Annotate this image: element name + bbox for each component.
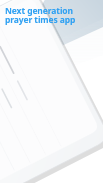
staticText: Next generation prayer times app <box>5 5 76 26</box>
button[interactable]: Next generation prayer times app <box>4 5 78 26</box>
button[interactable]: Add prayer reminder <box>84 124 96 183</box>
